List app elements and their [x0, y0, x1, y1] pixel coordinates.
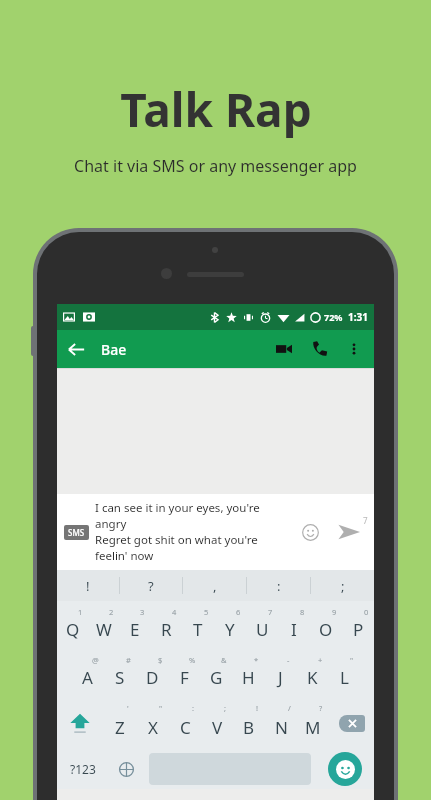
button[interactable]: / [265, 697, 297, 749]
staticText: 5 [204, 607, 209, 617]
staticText: E [130, 618, 140, 641]
button[interactable]: 5 [182, 601, 214, 649]
staticText: H [242, 666, 255, 689]
button[interactable]: # [104, 649, 136, 697]
staticText: Q [66, 618, 80, 641]
button[interactable]: ? [297, 697, 329, 749]
staticText: - [287, 655, 290, 665]
staticText: O [319, 618, 333, 641]
button[interactable]: - [264, 649, 296, 697]
button[interactable]: Shift [57, 697, 103, 749]
button[interactable]: 8 [278, 601, 310, 649]
staticText: ?123 [70, 761, 96, 777]
staticText: K [307, 666, 318, 689]
button[interactable]: Backspace [329, 697, 374, 749]
button[interactable]: ' [103, 697, 136, 749]
staticText: % [189, 655, 196, 665]
staticText: ? [319, 703, 323, 713]
staticText: Bae [101, 340, 127, 359]
button[interactable]: 9 [310, 601, 342, 649]
staticText: P [353, 618, 364, 641]
button[interactable]: 3 [119, 601, 150, 649]
button[interactable]: Back [57, 330, 95, 368]
button[interactable]: : [247, 570, 310, 601]
button[interactable]: Change keyboard language [108, 749, 145, 789]
button[interactable]: ? [120, 570, 182, 601]
button[interactable]: ! [57, 570, 119, 601]
staticText: 6 [236, 607, 241, 617]
button[interactable]: 2 [88, 601, 119, 649]
button[interactable]: ; [311, 570, 374, 601]
staticText: : [277, 577, 281, 595]
staticText: Regret got shit on what you're [95, 532, 258, 548]
button[interactable]: Call [302, 331, 338, 367]
staticText: T [193, 618, 203, 641]
button[interactable]: SMS [68, 527, 85, 538]
button[interactable]: 1 [57, 601, 88, 649]
button[interactable]: Insert emoji [293, 515, 327, 549]
staticText: " [159, 703, 163, 713]
staticText: ! [256, 703, 259, 713]
staticText: # [126, 655, 131, 665]
button[interactable]: + [296, 649, 328, 697]
staticText: G [210, 666, 223, 689]
staticText: 8 [300, 607, 305, 617]
staticText: ; [224, 703, 227, 713]
staticText: feelin' now [95, 548, 154, 564]
button[interactable]: , [183, 570, 246, 601]
staticText: A [82, 666, 93, 689]
staticText: 7 [268, 607, 273, 617]
button[interactable]: 4 [150, 601, 182, 649]
staticText: B [243, 716, 255, 739]
staticText: 4 [172, 607, 177, 617]
staticText: Z [115, 716, 125, 739]
staticText: U [256, 618, 269, 641]
staticText: 1 [78, 607, 83, 617]
staticText: R [161, 618, 172, 641]
button[interactable]: * [232, 649, 264, 697]
button[interactable]: ; [201, 697, 233, 749]
staticText: 3 [140, 607, 145, 617]
button[interactable]: Emoji keyboard [315, 749, 374, 789]
button[interactable]: @ [71, 649, 104, 697]
button[interactable]: ! [233, 697, 265, 749]
button[interactable]: % [168, 649, 200, 697]
staticText: + [318, 655, 323, 665]
button[interactable]: 0 [342, 601, 374, 649]
staticText: : [192, 703, 195, 713]
staticText: @ [92, 655, 99, 665]
staticText: " [350, 655, 354, 665]
staticText: SMS [68, 527, 85, 538]
staticText: L [340, 666, 349, 689]
button[interactable]: & [200, 649, 232, 697]
button[interactable]: " [328, 649, 360, 697]
staticText: W [96, 618, 112, 641]
staticText: 9 [332, 607, 337, 617]
staticText: I can see it in your eyes, you're [95, 500, 260, 516]
button[interactable]: Video call [266, 331, 302, 367]
staticText: V [212, 716, 223, 739]
button[interactable]: 6 [214, 601, 246, 649]
staticText: M [305, 716, 321, 739]
staticText: Chat it via SMS or any messenger app [74, 155, 357, 177]
staticText: C [180, 716, 191, 739]
staticText: D [146, 666, 159, 689]
staticText: * [254, 655, 259, 665]
button[interactable]: Send [327, 510, 371, 554]
button[interactable]: : [169, 697, 201, 749]
button[interactable]: $ [136, 649, 168, 697]
button[interactable]: More options [338, 333, 370, 365]
staticText: ? [148, 577, 154, 595]
button[interactable]: " [136, 697, 169, 749]
staticText: 72% [324, 311, 343, 323]
button[interactable]: ?123 [57, 749, 108, 789]
button[interactable]: 7 [246, 601, 278, 649]
staticText: ! [86, 577, 90, 595]
staticText: N [275, 716, 288, 739]
staticText: Talk Rap [120, 78, 312, 141]
staticText: angry [95, 516, 127, 532]
staticText: S [115, 666, 125, 689]
staticText: , [213, 577, 217, 595]
staticText: 0 [364, 607, 369, 617]
